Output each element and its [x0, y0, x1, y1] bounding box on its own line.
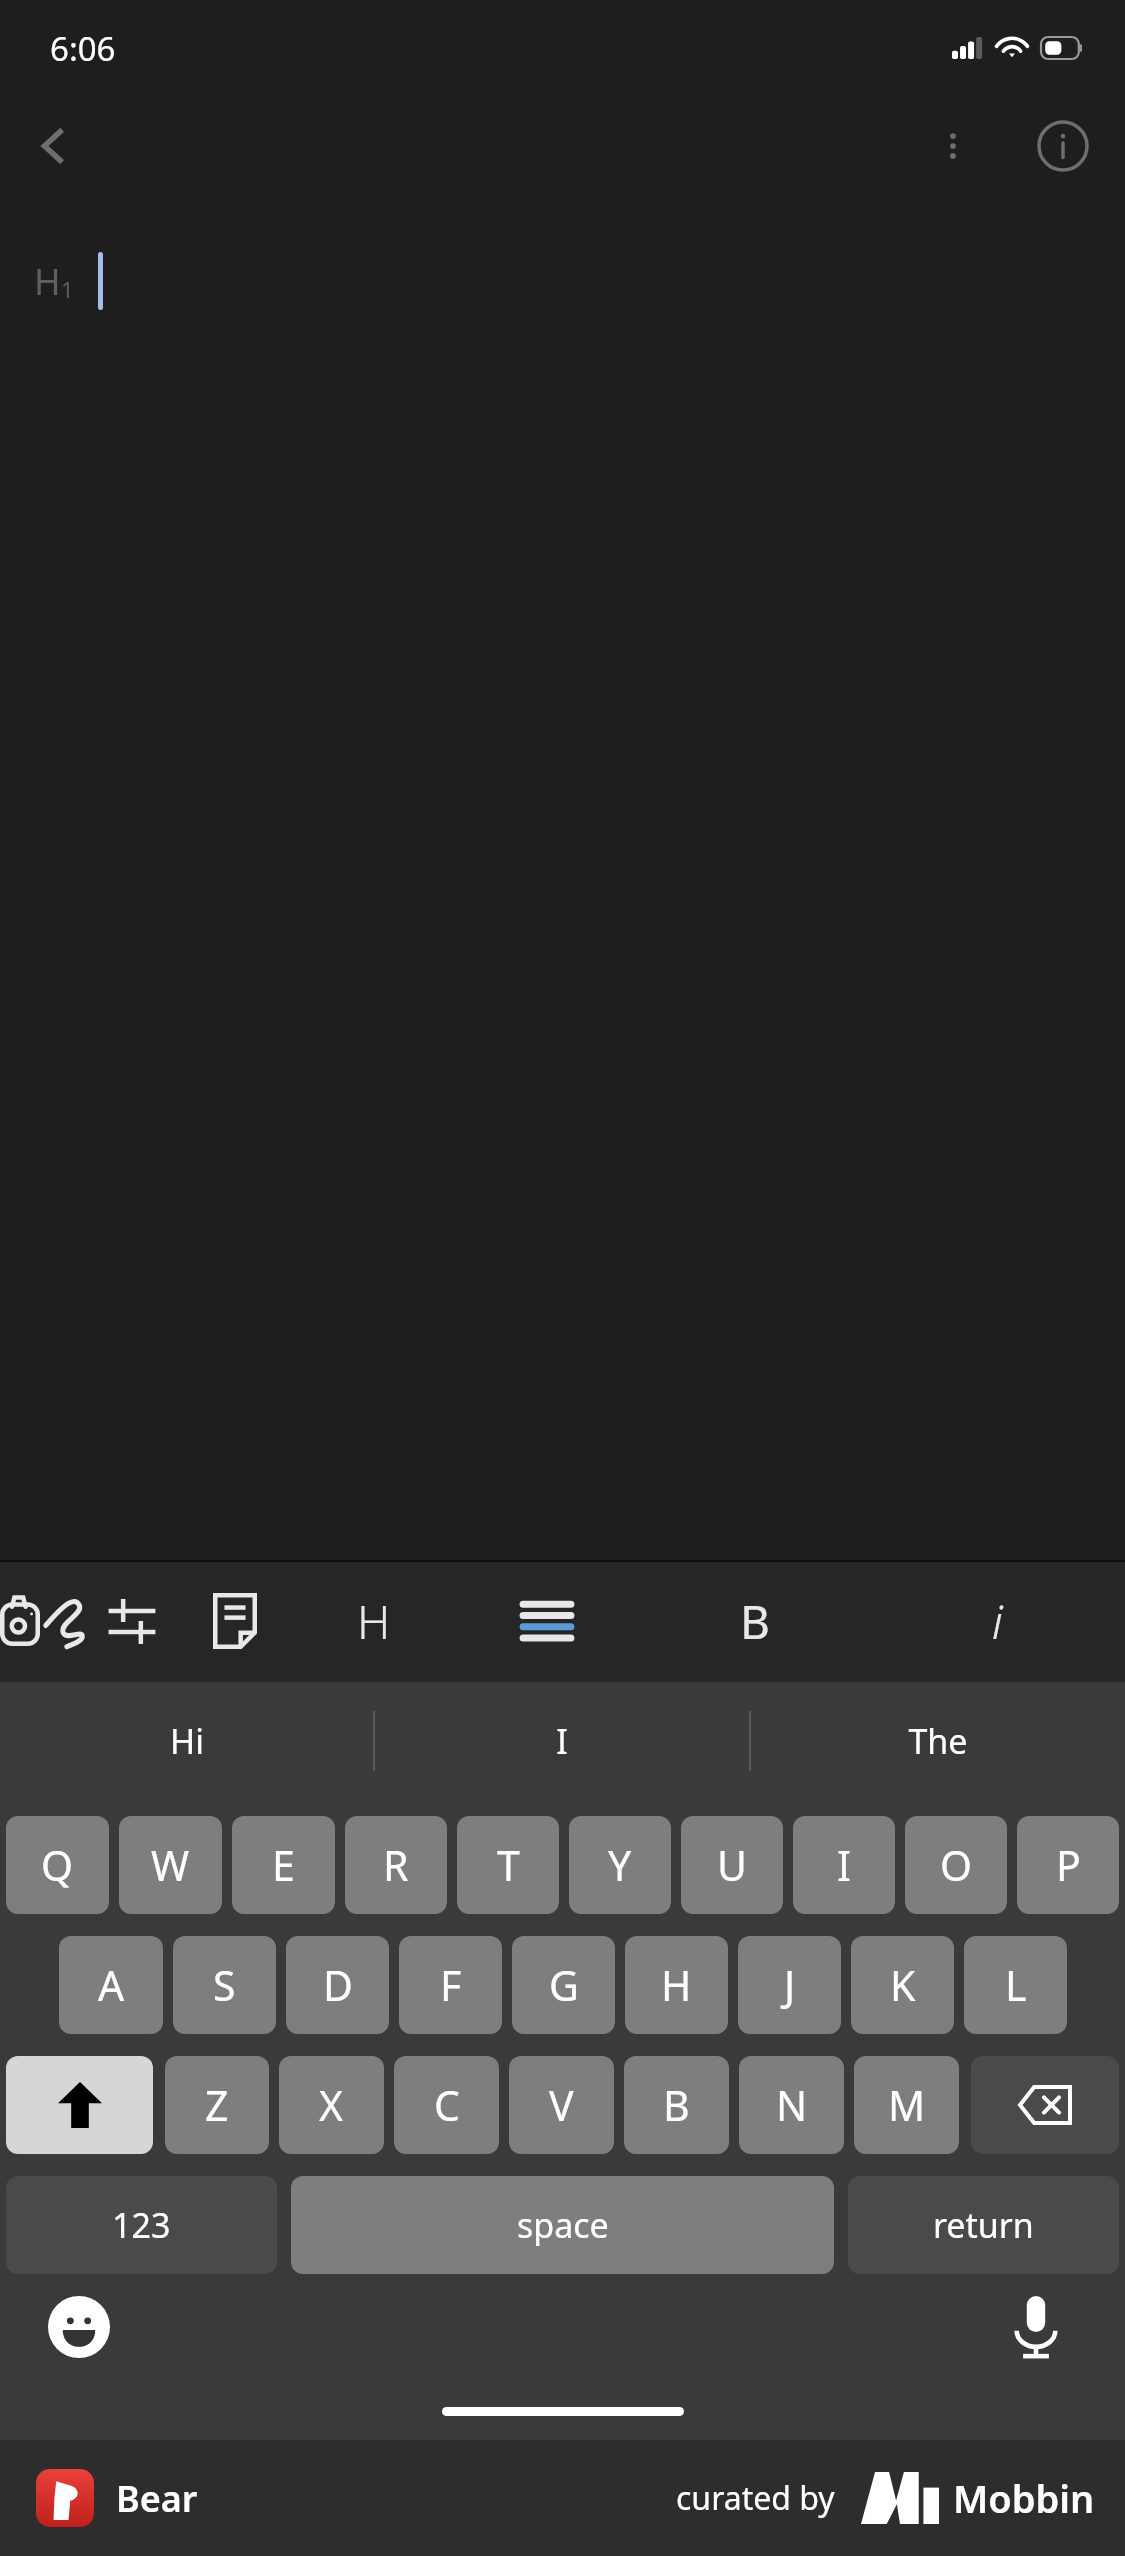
button[interactable]: Hi	[0, 1682, 373, 1800]
staticText: Mobbin	[953, 2472, 1095, 2524]
staticText: E	[272, 1837, 295, 1893]
button[interactable]: K	[851, 1936, 954, 2034]
button[interactable]: Backspace	[971, 2056, 1119, 2154]
staticText: R	[383, 1837, 409, 1893]
button[interactable]: H	[625, 1936, 728, 2034]
button[interactable]: Formatting options	[88, 1560, 176, 1682]
button[interactable]: Heading	[294, 1560, 453, 1682]
button[interactable]: I	[793, 1816, 895, 1914]
staticText: G	[549, 1957, 579, 2013]
button[interactable]: E	[232, 1816, 335, 1914]
button[interactable]: Info	[1021, 104, 1105, 188]
button[interactable]: Voice input	[999, 2290, 1073, 2364]
staticText: D	[323, 1957, 353, 2013]
staticText: C	[434, 2077, 460, 2133]
staticText: H	[357, 1590, 391, 1653]
staticText: O	[940, 1837, 973, 1893]
button[interactable]: A	[59, 1936, 163, 2034]
staticText: H	[34, 257, 61, 306]
staticText: P	[1056, 1837, 1081, 1893]
button[interactable]: return	[848, 2176, 1119, 2274]
button[interactable]: J	[738, 1936, 841, 2034]
button[interactable]: 123	[6, 2176, 277, 2274]
staticText: X	[319, 2077, 344, 2133]
button[interactable]: Q	[6, 1816, 109, 1914]
button[interactable]: Emoji	[42, 2290, 116, 2364]
staticText: The	[908, 1718, 968, 1764]
staticText: B	[663, 2077, 690, 2133]
button[interactable]: V	[509, 2056, 614, 2154]
button[interactable]: Draw	[40, 1560, 88, 1682]
button[interactable]: B	[624, 2056, 729, 2154]
button[interactable]: R	[345, 1816, 447, 1914]
staticText: i	[992, 1590, 1003, 1653]
button[interactable]: G	[512, 1936, 615, 2034]
staticText: K	[890, 1957, 916, 2013]
staticText: I	[556, 1718, 568, 1764]
staticText: W	[151, 1837, 190, 1893]
button[interactable]: T	[457, 1816, 559, 1914]
button[interactable]: Bold	[641, 1560, 869, 1682]
button[interactable]: space	[291, 2176, 834, 2274]
button[interactable]: Z	[165, 2056, 269, 2154]
staticText: 6:06	[50, 26, 116, 71]
staticText: 1	[61, 274, 74, 304]
staticText: S	[213, 1957, 236, 2013]
staticText: I	[837, 1837, 851, 1893]
button[interactable]: M	[854, 2056, 959, 2154]
button[interactable]: C	[394, 2056, 499, 2154]
staticText: L	[1005, 1957, 1027, 2013]
staticText: T	[497, 1837, 520, 1893]
staticText: return	[933, 2202, 1034, 2248]
staticText: space	[517, 2202, 609, 2248]
staticText: A	[98, 1957, 125, 2013]
button[interactable]: D	[286, 1936, 389, 2034]
button[interactable]: U	[681, 1816, 783, 1914]
button[interactable]: N	[739, 2056, 844, 2154]
button[interactable]: Back	[12, 104, 96, 188]
staticText: curated by	[676, 2476, 835, 2520]
button[interactable]: S	[173, 1936, 276, 2034]
button[interactable]: More options	[911, 104, 995, 188]
button[interactable]: W	[119, 1816, 222, 1914]
staticText: B	[740, 1590, 770, 1653]
staticText: Q	[41, 1837, 74, 1893]
staticText: J	[784, 1957, 796, 2013]
button[interactable]: F	[399, 1936, 502, 2034]
staticText: Hi	[170, 1718, 204, 1764]
button[interactable]: Italic	[869, 1560, 1125, 1682]
button[interactable]: Shift	[6, 2056, 153, 2154]
button[interactable]: P	[1017, 1816, 1119, 1914]
button[interactable]: L	[964, 1936, 1067, 2034]
staticText: Y	[608, 1837, 632, 1893]
button[interactable]: Y	[569, 1816, 671, 1914]
button[interactable]: Insert photo	[0, 1560, 40, 1682]
staticText: N	[776, 2077, 808, 2133]
staticText: U	[717, 1837, 747, 1893]
staticText: H	[661, 1957, 692, 2013]
button[interactable]: O	[905, 1816, 1007, 1914]
staticText: Z	[205, 2077, 229, 2133]
staticText: F	[440, 1957, 462, 2013]
button[interactable]: Note templates	[176, 1560, 294, 1682]
staticText: Bear	[116, 2474, 198, 2523]
button[interactable]: The	[751, 1682, 1125, 1800]
staticText: M	[888, 2077, 926, 2133]
button[interactable]: I	[375, 1682, 749, 1800]
button[interactable]: Paragraph style	[453, 1560, 641, 1682]
staticText: V	[549, 2077, 574, 2133]
button[interactable]: X	[279, 2056, 384, 2154]
staticText: 123	[112, 2202, 171, 2248]
